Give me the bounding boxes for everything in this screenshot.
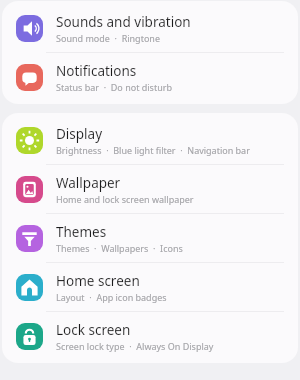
button[interactable]: Notifications [2,53,298,101]
staticText: Home screen [56,272,140,290]
button[interactable]: Themes [2,214,298,262]
button[interactable]: Lock screen [2,312,298,360]
staticText: Status bar · Do not disturb [56,81,172,93]
staticText: Brightness · Blue light filter · Navigat… [56,144,250,156]
button[interactable]: Home screen [2,263,298,311]
staticText: Themes [56,223,107,241]
button[interactable]: Wallpaper [2,165,298,213]
button[interactable]: Display [2,116,298,164]
staticText: Layout · App icon badges [56,291,167,303]
staticText: Wallpaper [56,174,121,192]
staticText: Sounds and vibration [56,13,191,31]
staticText: Notifications [56,62,137,80]
staticText: Screen lock type · Always On Display [56,340,214,352]
staticText: Themes · Wallpapers · Icons [56,242,183,254]
staticText: Lock screen [56,321,131,339]
staticText: Sound mode · Ringtone [56,32,160,44]
button[interactable]: Sounds and vibration [2,4,298,52]
staticText: Home and lock screen wallpaper [56,193,194,205]
staticText: Display [56,125,103,143]
